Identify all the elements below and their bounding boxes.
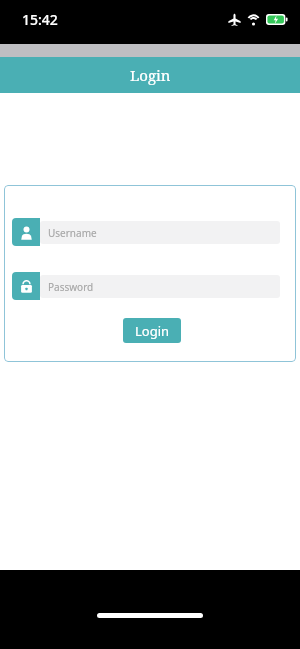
staticText: Login [130, 65, 171, 85]
other: Password [12, 272, 40, 300]
staticText: Username [48, 226, 97, 240]
button[interactable]: Login [123, 318, 181, 343]
staticText: Login [135, 322, 170, 340]
button[interactable]: Password [12, 272, 280, 300]
staticText: 15:42 [22, 10, 58, 29]
other: Username [12, 218, 40, 246]
staticText: Password [48, 280, 94, 294]
button[interactable]: Username [12, 218, 280, 246]
